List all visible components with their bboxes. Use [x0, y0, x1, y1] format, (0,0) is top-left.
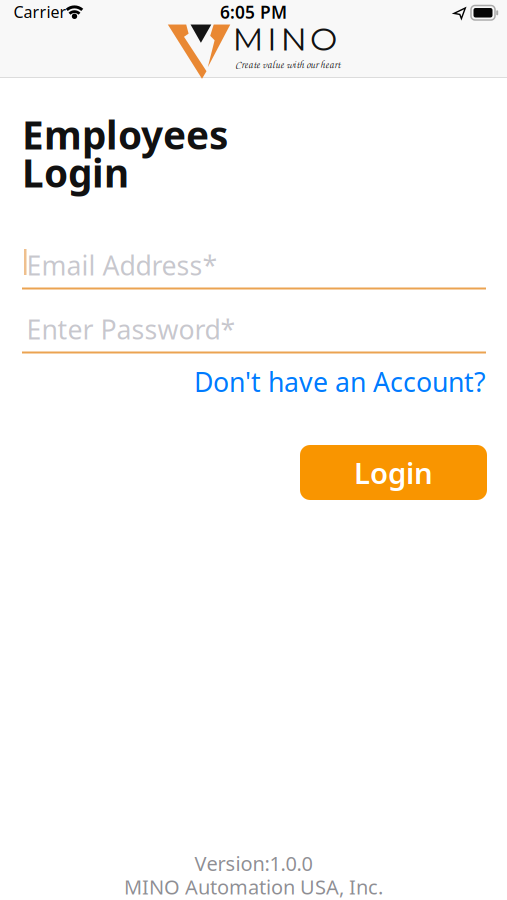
button[interactable]: Email Address [22, 245, 486, 291]
staticText: Create value with our heart [235, 57, 340, 71]
staticText: MINO Automation USA, Inc. [124, 873, 383, 900]
staticText: Email Address* [26, 247, 217, 283]
button[interactable]: Login [300, 445, 487, 500]
staticText: Login [354, 453, 433, 492]
button[interactable]: Enter Password [22, 309, 486, 355]
button[interactable]: Don't have an Account? [194, 364, 486, 399]
staticText: Carrier [13, 1, 66, 22]
staticText: Employees [22, 109, 228, 160]
staticText: 6:05 PM [220, 0, 287, 23]
staticText: Enter Password* [26, 311, 235, 347]
staticText: MINO [232, 19, 337, 59]
staticText: Version:1.0.0 [194, 850, 312, 877]
staticText: Don't have an Account? [194, 364, 486, 399]
staticText: Login [22, 147, 129, 198]
